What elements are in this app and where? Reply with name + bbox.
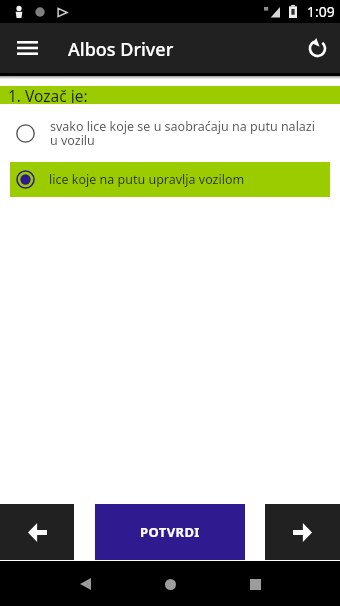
button[interactable]: svako lice koje se u saobraćaju na putu … [0, 104, 340, 162]
button[interactable]: Next [265, 504, 340, 560]
staticText: 1:09 [307, 2, 335, 21]
button[interactable]: Home [149, 563, 191, 605]
staticText: lice koje na putu upravlja vozilom [49, 171, 245, 188]
button[interactable]: lice koje na putu upravlja vozilom [10, 162, 330, 197]
button[interactable]: POTVRDI [95, 504, 245, 560]
button[interactable]: Previous [0, 504, 74, 560]
staticText: svako lice koje se u saobraćaju na putu … [50, 118, 320, 149]
staticText: POTVRDI [140, 523, 200, 541]
button[interactable]: Open navigation menu [10, 31, 44, 65]
staticText: Albos Driver [68, 37, 174, 62]
button[interactable]: Recent apps [234, 563, 276, 605]
button[interactable]: Back [64, 563, 106, 605]
staticText: 1. Vozač je: [8, 85, 88, 103]
button[interactable]: Refresh [300, 31, 334, 65]
